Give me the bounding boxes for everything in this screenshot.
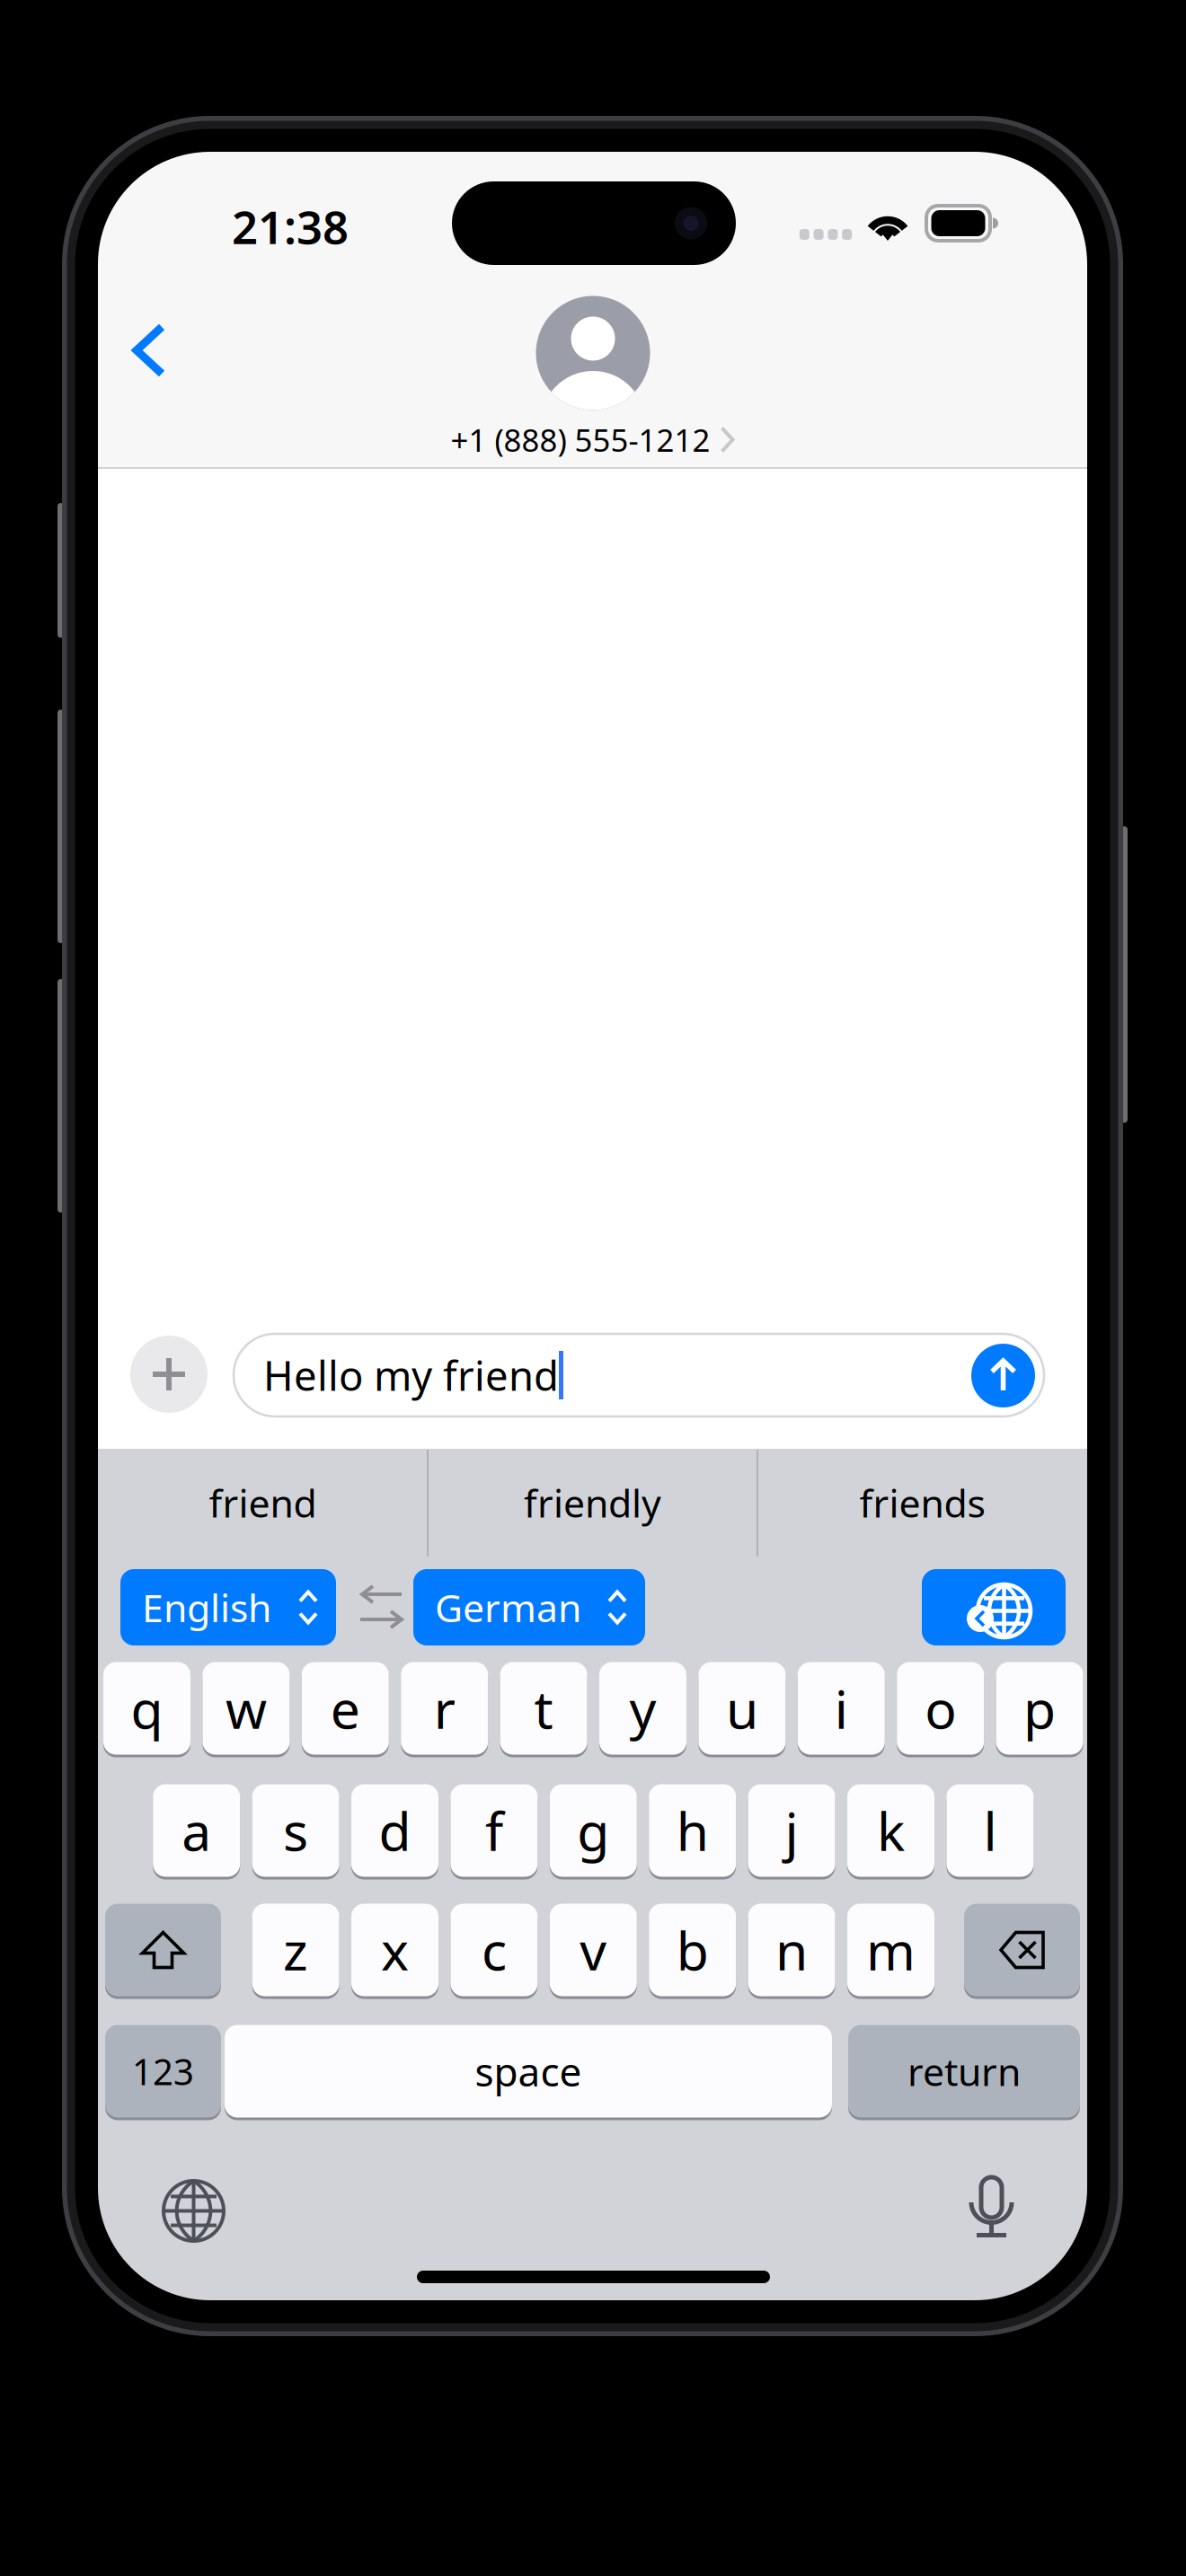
button[interactable]: f (451, 1783, 538, 1878)
button[interactable]: t (500, 1661, 587, 1756)
button[interactable]: q (103, 1661, 190, 1756)
button[interactable]: Back (113, 309, 196, 392)
button[interactable]: y (599, 1661, 686, 1756)
button[interactable]: m (847, 1902, 934, 1998)
button[interactable]: s (252, 1783, 339, 1878)
button[interactable]: l (946, 1783, 1034, 1878)
button[interactable] (225, 2024, 832, 2119)
staticText: English (142, 1582, 271, 1633)
staticText: k (877, 1795, 905, 1865)
staticText: Hello my friend (263, 1348, 559, 1402)
button[interactable] (848, 2024, 1080, 2119)
button[interactable]: Dictate (971, 2177, 1012, 2238)
staticText: q (131, 1673, 163, 1743)
button[interactable]: o (897, 1661, 984, 1756)
staticText: w (225, 1673, 267, 1743)
button[interactable]: English (120, 1569, 336, 1645)
button[interactable]: j (748, 1783, 835, 1878)
button[interactable]: c (451, 1902, 538, 1998)
staticText: e (330, 1673, 360, 1743)
button[interactable]: b (649, 1902, 736, 1998)
staticText: m (866, 1915, 916, 1985)
staticText: d (379, 1795, 411, 1865)
staticText: friends (859, 1477, 985, 1528)
staticText: v (580, 1915, 607, 1985)
staticText: 123 (132, 2047, 194, 2095)
button[interactable]: Delete (964, 1902, 1080, 1998)
staticText: friendly (524, 1477, 661, 1528)
staticText: s (283, 1795, 308, 1865)
staticText: l (983, 1795, 997, 1865)
staticText: t (534, 1673, 553, 1743)
button[interactable]: Switch keyboard language (922, 1569, 1066, 1645)
button[interactable]: Send (971, 1344, 1035, 1407)
staticText: j (785, 1795, 798, 1865)
button[interactable]: k (847, 1783, 934, 1878)
button[interactable]: z (252, 1902, 339, 1998)
button[interactable]: friends (757, 1449, 1087, 1557)
staticText: a (182, 1795, 211, 1865)
button[interactable]: friendly (428, 1449, 757, 1557)
button[interactable] (105, 2024, 221, 2119)
button[interactable]: Shift (105, 1902, 221, 1998)
staticText: +1 (888) 555-1212 (451, 419, 710, 460)
button[interactable]: h (649, 1783, 736, 1878)
button[interactable]: friend (98, 1449, 428, 1557)
staticText: o (925, 1673, 956, 1743)
button[interactable]: v (550, 1902, 637, 1998)
button[interactable]: a (153, 1783, 240, 1878)
button[interactable]: n (748, 1902, 835, 1998)
staticText: f (485, 1795, 503, 1865)
staticText: friend (209, 1477, 317, 1528)
button[interactable]: i (798, 1661, 885, 1756)
button[interactable]: g (550, 1783, 637, 1878)
staticText: b (676, 1915, 709, 1985)
staticText: 21:38 (232, 196, 349, 257)
staticText: p (1023, 1673, 1056, 1743)
staticText: x (381, 1915, 409, 1985)
staticText: h (676, 1795, 709, 1865)
staticText: return (907, 2046, 1021, 2097)
button[interactable]: p (996, 1661, 1083, 1756)
button[interactable]: w (203, 1661, 290, 1756)
button[interactable]: x (351, 1902, 438, 1998)
button[interactable]: r (401, 1661, 488, 1756)
staticText: German (435, 1582, 581, 1633)
button[interactable]: e (302, 1661, 389, 1756)
staticText: z (283, 1915, 308, 1985)
staticText: y (629, 1673, 656, 1743)
button[interactable]: Add attachment (130, 1336, 208, 1413)
staticText: space (475, 2045, 582, 2097)
staticText: i (835, 1673, 848, 1743)
staticText: n (775, 1915, 808, 1985)
button[interactable]: d (351, 1783, 438, 1878)
staticText: c (481, 1915, 507, 1985)
staticText: r (434, 1673, 455, 1743)
staticText: g (577, 1795, 609, 1865)
button[interactable]: German (413, 1569, 645, 1645)
button[interactable]: +1 (888) 555-1212 (386, 293, 800, 463)
staticText: u (726, 1673, 758, 1743)
button[interactable]: Next keyboard (164, 2181, 224, 2241)
button[interactable]: u (698, 1661, 786, 1756)
